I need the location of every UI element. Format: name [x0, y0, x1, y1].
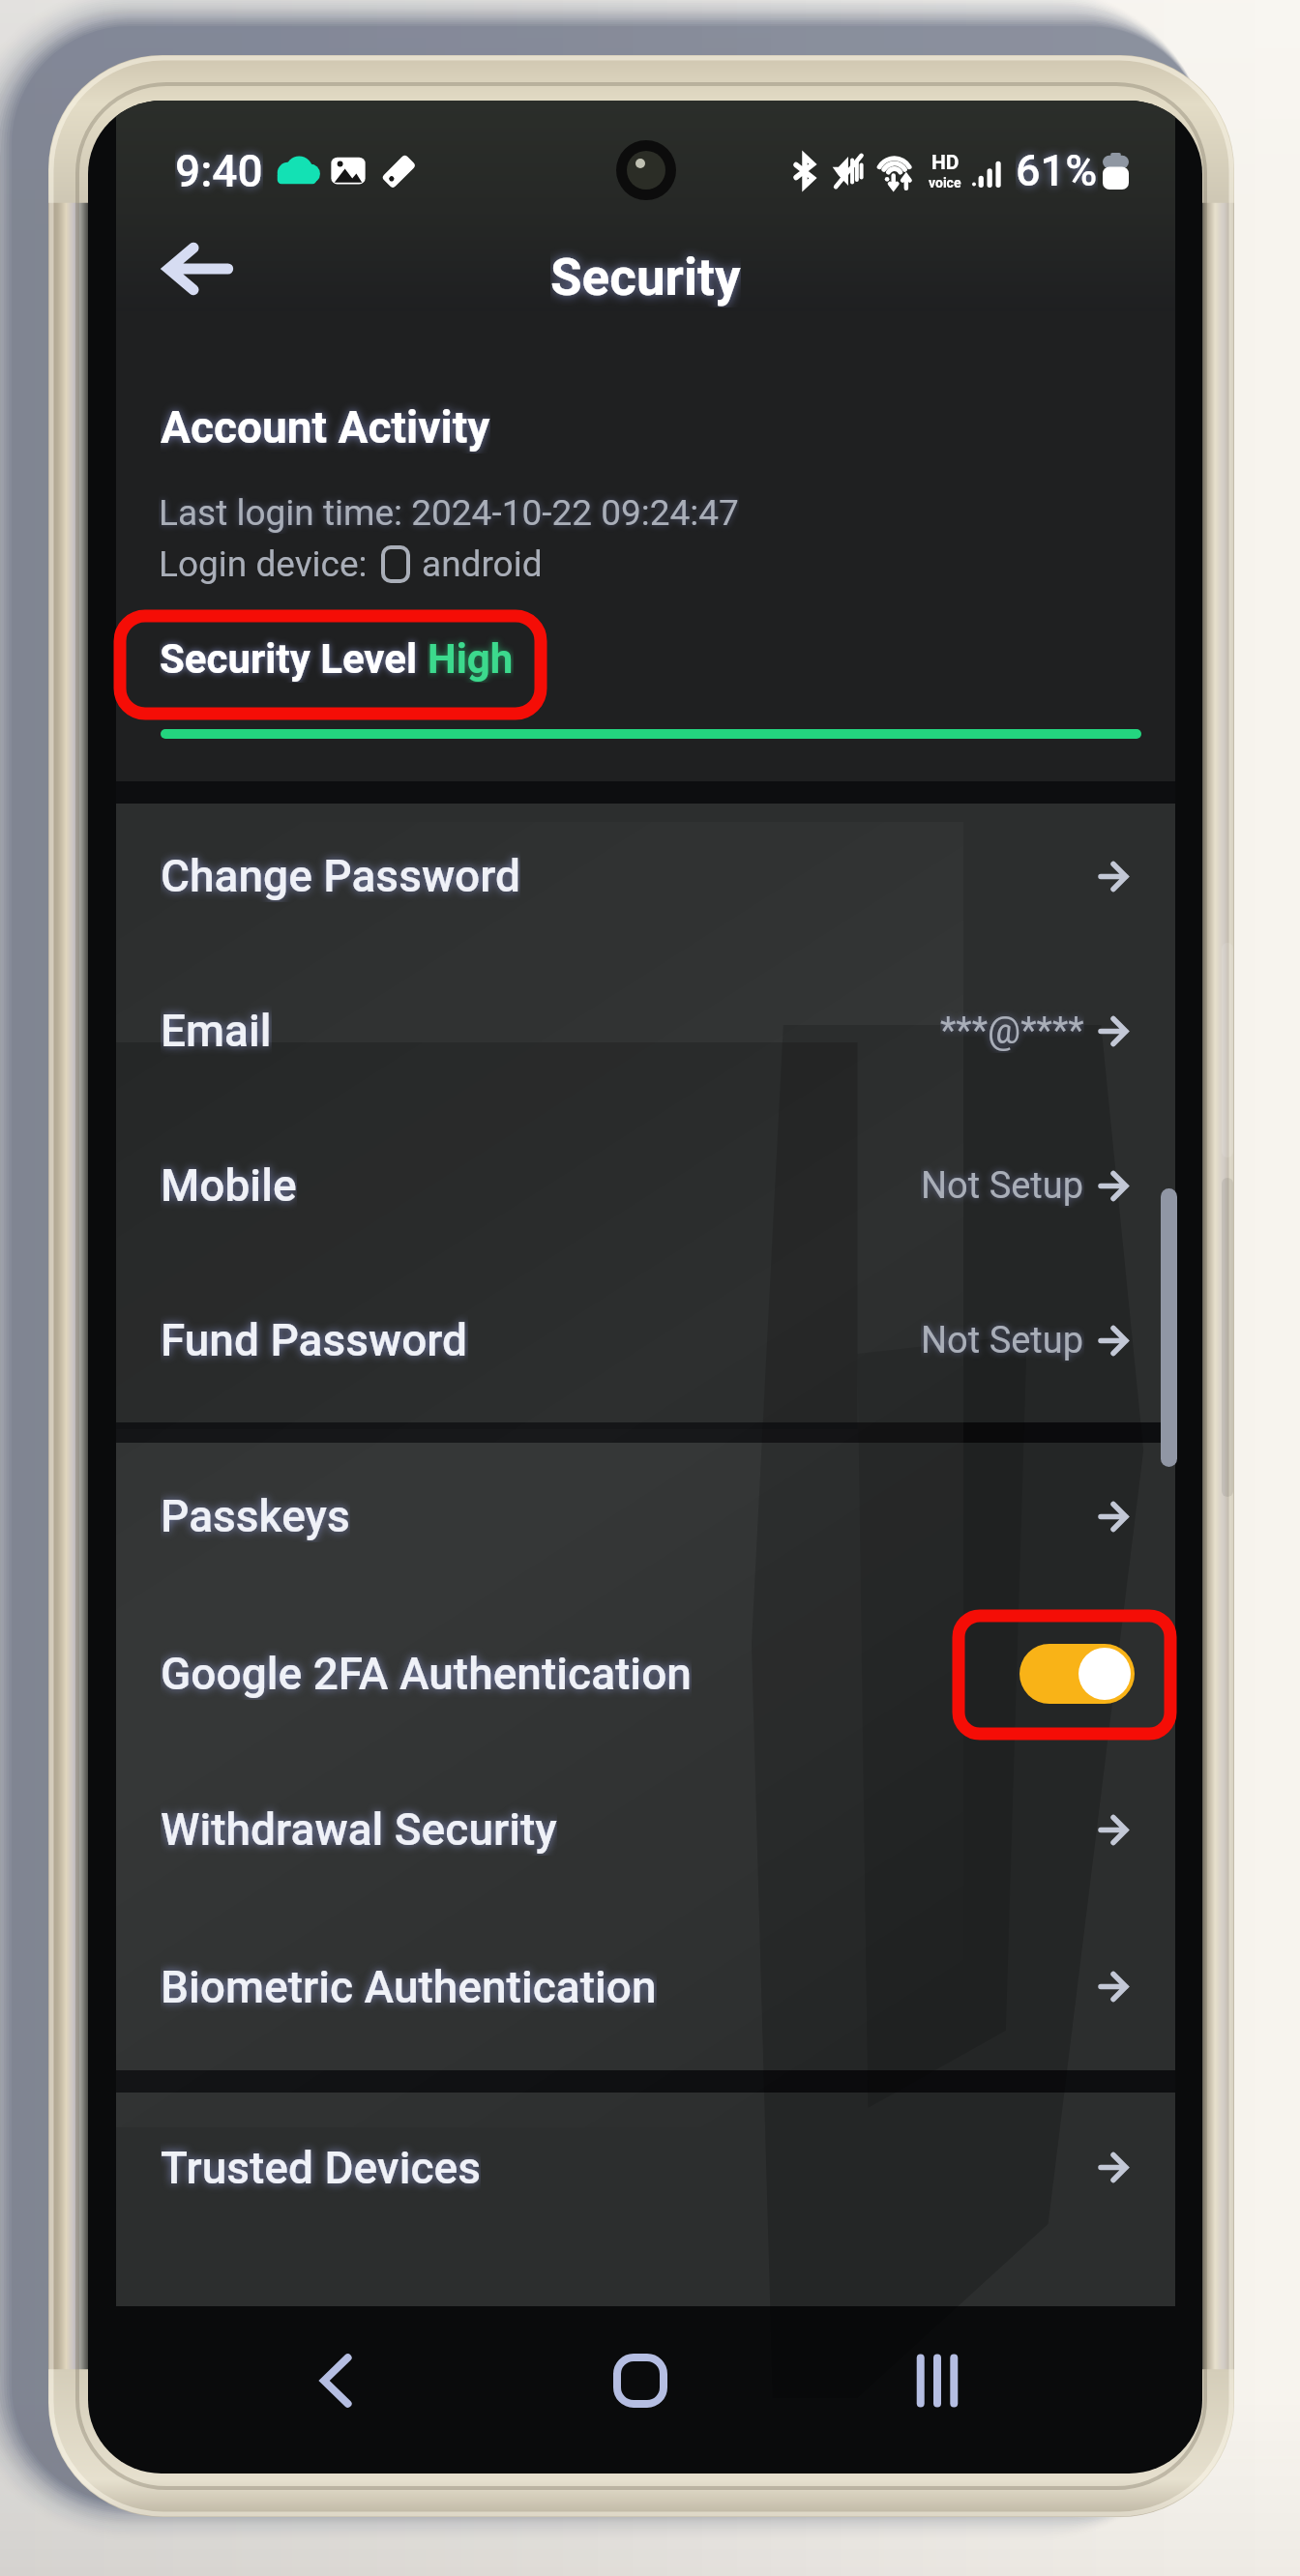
button[interactable]: Passkeys: [116, 1443, 1175, 1599]
staticText: HD: [931, 151, 960, 175]
staticText: Biometric Authentication: [161, 1961, 657, 2013]
staticText: Security Level: [160, 635, 428, 683]
staticText: Mobile: [161, 1159, 297, 1212]
staticText: Change Password: [161, 850, 520, 902]
button[interactable]: Google 2FA toggle, on: [1019, 1644, 1135, 1704]
staticText: 61%: [1016, 145, 1098, 196]
staticText: ***@****: [940, 1010, 1084, 1053]
staticText: Security: [550, 248, 741, 307]
staticText: Trusted Devices: [161, 2142, 481, 2194]
staticText: High: [428, 635, 514, 683]
staticText: Fund Password: [161, 1314, 468, 1366]
staticText: Not Setup: [921, 1319, 1084, 1362]
staticText: Not Setup: [921, 1164, 1084, 1208]
button[interactable]: Trusted Devices: [116, 2093, 1175, 2252]
staticText: High: [428, 635, 514, 683]
button[interactable]: Biometric Authentication: [116, 1913, 1175, 2070]
staticText: Change Password: [161, 850, 520, 902]
staticText: Withdrawal Security: [161, 1803, 557, 1856]
staticText: Security Level: [160, 635, 428, 683]
button[interactable]: Fund Password: [116, 1268, 1175, 1422]
staticText: ***@****: [940, 1010, 1084, 1053]
staticText: 9:40: [175, 145, 263, 197]
staticText: Login device:: [159, 543, 368, 585]
staticText: Passkeys: [161, 1490, 350, 1542]
staticText: Withdrawal Security: [161, 1803, 557, 1856]
staticText: Email: [161, 1005, 272, 1057]
staticText: Google 2FA Authentication: [161, 1648, 692, 1700]
button[interactable]: Back: [305, 2349, 365, 2413]
staticText: Not Setup: [921, 1319, 1084, 1362]
staticText: Account Activity: [161, 401, 490, 454]
button[interactable]: Mobile: [116, 1113, 1175, 1268]
button[interactable]: Home: [609, 2349, 671, 2413]
button[interactable]: Withdrawal Security: [116, 1756, 1175, 1913]
staticText: Account Activity: [161, 401, 490, 454]
staticText: Mobile: [161, 1159, 297, 1212]
staticText: 61%: [1016, 145, 1098, 196]
staticText: Fund Password: [161, 1314, 468, 1366]
staticText: Email: [161, 1005, 272, 1057]
staticText: voice: [929, 175, 961, 190]
staticText: Last login time: 2024-10-22 09:24:47: [159, 492, 739, 534]
staticText: Last login time: 2024-10-22 09:24:47: [159, 492, 739, 534]
button[interactable]: Recent apps: [907, 2349, 967, 2413]
staticText: Biometric Authentication: [161, 1961, 657, 2013]
staticText: Not Setup: [921, 1164, 1084, 1208]
staticText: 9:40: [175, 145, 263, 197]
button[interactable]: Google 2FA Authentication: [116, 1599, 1175, 1756]
staticText: Google 2FA Authentication: [161, 1648, 692, 1700]
button[interactable]: Change Password: [116, 804, 1175, 958]
staticText: Passkeys: [161, 1490, 350, 1542]
staticText: Security: [550, 248, 741, 307]
staticText: android: [422, 543, 543, 585]
staticText: Trusted Devices: [161, 2142, 481, 2194]
button[interactable]: Back: [157, 228, 238, 309]
button[interactable]: Email: [116, 958, 1175, 1113]
